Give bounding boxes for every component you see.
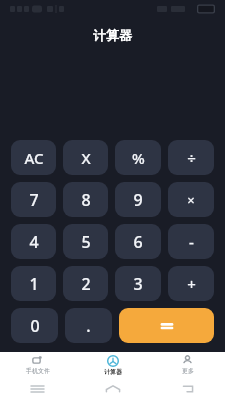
button[interactable]: X [63,140,108,175]
button[interactable]: ÷ [168,140,214,175]
staticText: 4 [29,231,39,253]
button[interactable]: 1 [11,266,56,301]
staticText: ÷ [187,148,196,168]
staticText: - [189,232,194,252]
staticText: 更多 [182,367,194,375]
button[interactable]: 计算器 [75,352,150,378]
staticText: 计算器 [93,27,132,43]
button[interactable]: 手机文件 [0,352,75,378]
staticText: 8 [81,189,91,211]
staticText: × [187,191,195,209]
staticText: AC [24,148,44,168]
staticText: 9 [133,189,143,211]
button[interactable]: 4 [11,224,56,259]
staticText: % [132,148,145,168]
button[interactable]: 6 [115,224,161,259]
staticText: 3 [133,273,143,295]
button[interactable]: 3 [115,266,161,301]
button[interactable]: × [168,182,214,217]
button[interactable]: Equals [119,308,214,343]
staticText: 手机文件 [26,367,50,375]
button[interactable]: 7 [11,182,56,217]
staticText: 6 [133,231,143,253]
button[interactable]: 8 [63,182,108,217]
button[interactable]: 5 [63,224,108,259]
button[interactable]: 更多 [150,352,225,378]
staticText: + [187,274,196,294]
staticText: 1 [29,273,39,295]
button[interactable]: 0 [11,308,58,343]
button[interactable]: AC [11,140,56,175]
button[interactable]: 9 [115,182,161,217]
staticText: 0 [30,315,40,337]
button[interactable]: - [168,224,214,259]
button[interactable]: 2 [63,266,108,301]
button[interactable]: % [115,140,161,175]
button[interactable]: Recents [0,378,75,400]
staticText: . [86,315,91,337]
button[interactable]: + [168,266,214,301]
button[interactable]: Back [150,378,225,400]
button[interactable]: Home [75,378,150,400]
staticText: 计算器 [104,368,122,376]
staticText: 2 [81,273,91,295]
staticText: X [81,148,91,168]
staticText: 5 [81,231,91,253]
staticText: 7 [29,189,39,211]
button[interactable]: . [65,308,112,343]
